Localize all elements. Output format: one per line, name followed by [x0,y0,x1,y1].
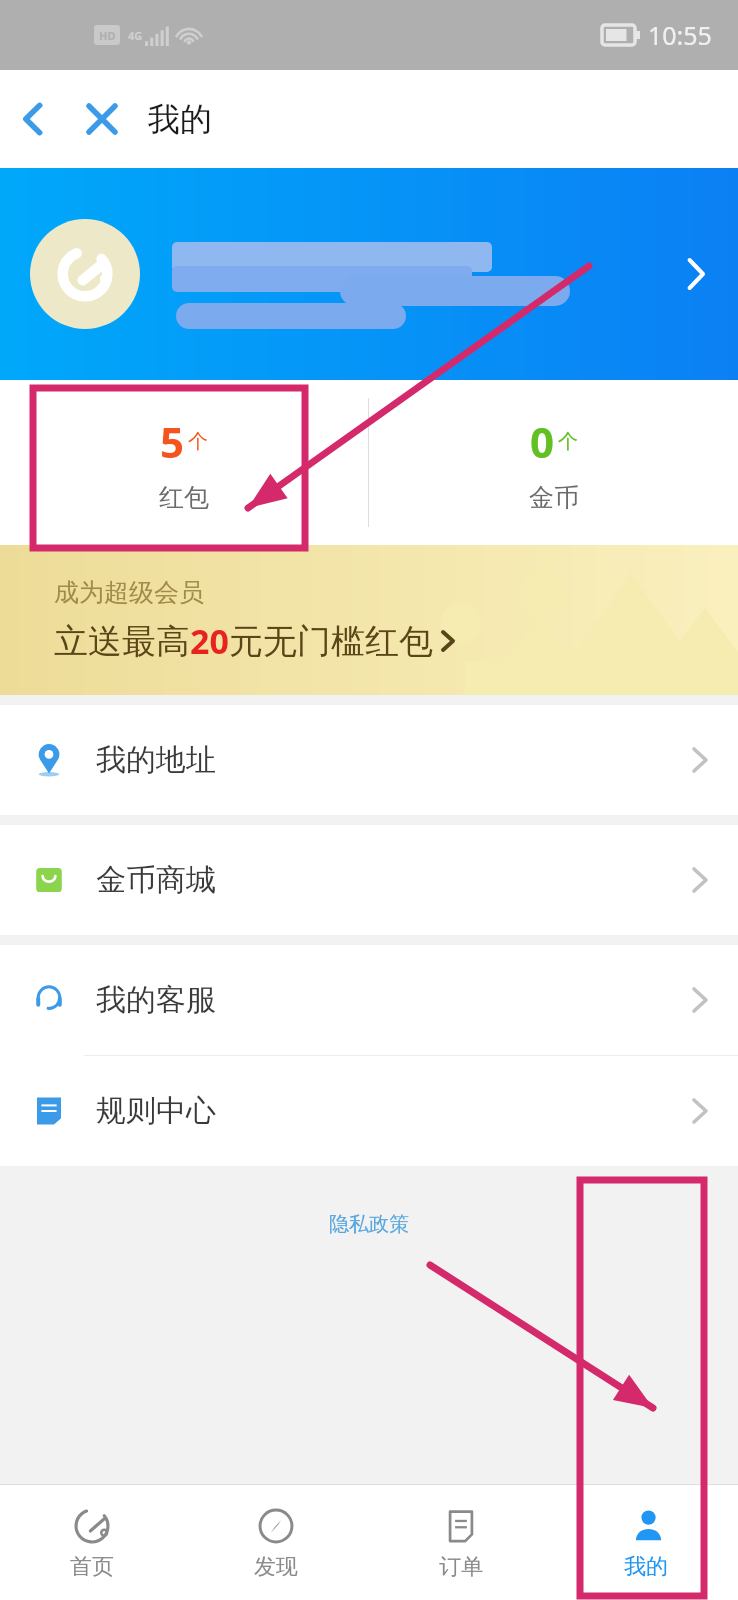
button[interactable]: 发现 [184,1485,368,1600]
button[interactable]: 订单 [368,1485,553,1600]
button[interactable]: 成为超级会员 [0,545,738,695]
staticText: 我的 [624,1553,668,1581]
staticText: 0 [530,413,555,470]
button[interactable]: Close [66,79,138,159]
staticText: 我的 [148,99,212,139]
staticText: 成为超级会员 [54,577,204,608]
button[interactable]: 我的 [553,1485,738,1600]
staticText: 10:55 [648,18,712,52]
button[interactable]: 金币商城 [0,825,738,935]
button[interactable]: 0 [369,380,738,545]
button[interactable]: Back [0,79,66,159]
staticText: 个 [188,429,208,454]
staticText: 金币商城 [96,861,216,899]
button[interactable]: 5 [0,380,368,545]
button[interactable]: 我的客服 [0,945,738,1055]
staticText: 4G [128,28,143,43]
button[interactable]: 隐私政策 [329,1212,409,1237]
button[interactable]: 我的地址 [0,705,738,815]
staticText: HD [99,28,116,43]
button[interactable]: 首页 [0,1485,184,1600]
staticText: 订单 [439,1553,483,1581]
staticText: 我的地址 [96,741,216,779]
staticText: 规则中心 [96,1092,216,1130]
staticText: 红包 [159,482,209,513]
button[interactable]: 规则中心 [0,1056,738,1166]
staticText: 首页 [70,1553,114,1581]
staticText: 个 [558,429,578,454]
staticText: 元无门槛红包 [229,620,433,663]
staticText: 我的客服 [96,981,216,1019]
staticText: 发现 [254,1553,298,1581]
button[interactable] [0,168,738,380]
staticText: 20 [190,618,229,664]
staticText: 金币 [529,482,579,513]
staticText: 立送最高 [54,620,190,663]
staticText: 5 [160,413,185,470]
